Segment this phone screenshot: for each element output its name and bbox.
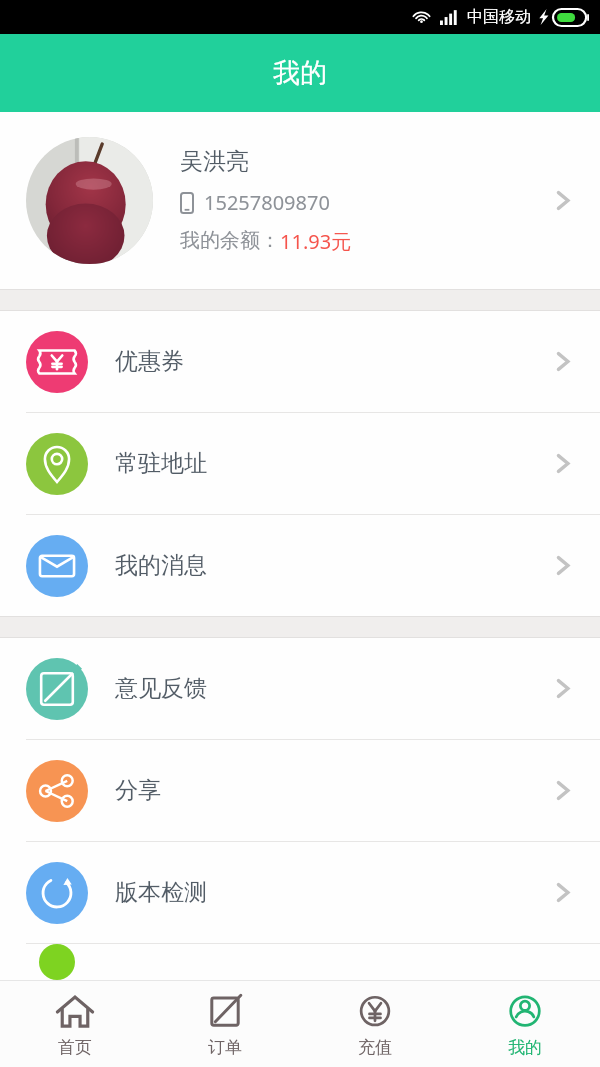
other: 我的消息 [26,535,88,597]
button[interactable]: 关于我们 [0,944,600,980]
staticText: 11.93元 [280,228,352,255]
button[interactable]: 常驻地址 [0,413,600,514]
staticText: 中国移动 [467,7,531,27]
button[interactable]: 意见反馈 [0,638,600,739]
button[interactable]: 充值 [300,981,450,1067]
staticText: 我的消息 [115,551,549,580]
button[interactable]: 版本检测 [0,842,600,943]
staticText: 优惠券 [115,347,549,376]
staticText: 意见反馈 [115,674,549,703]
other: 版本检测 [26,862,88,924]
button[interactable]: 我的 [450,981,600,1067]
staticText: 首页 [58,1037,92,1058]
other: 意见反馈 [26,658,88,720]
button[interactable]: 首页 [0,981,150,1067]
button[interactable]: 我的消息 [0,515,600,616]
staticText: 吴洪亮 [180,147,249,176]
staticText: 版本检测 [115,878,549,907]
staticText: 我的余额： [180,228,280,253]
staticText: 常驻地址 [115,449,549,478]
staticText: 分享 [115,776,549,805]
staticText: 15257809870 [204,189,330,216]
other: 优惠券 [26,331,88,393]
other: 分享 [26,760,88,822]
button[interactable]: 优惠券 [0,311,600,412]
button[interactable]: 分享 [0,740,600,841]
staticText: 我的 [508,1037,542,1058]
staticText: 订单 [208,1037,242,1058]
staticText: 充值 [358,1037,392,1058]
staticText: 我的 [273,56,327,90]
other: 常驻地址 [26,433,88,495]
other: 关于我们 [26,944,88,980]
button[interactable]: 订单 [150,981,300,1067]
button[interactable]: 吴洪亮 [0,112,600,289]
